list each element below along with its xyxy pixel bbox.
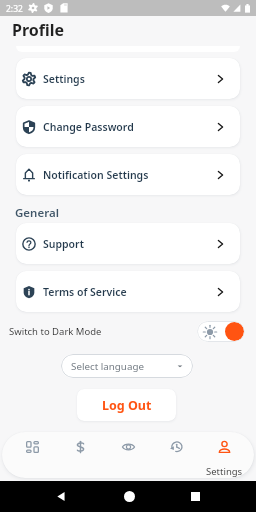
staticText: Select language xyxy=(71,360,144,373)
button[interactable]: Payments xyxy=(56,432,104,478)
staticText: Switch to Dark Mode xyxy=(9,325,102,338)
staticText: General xyxy=(15,205,59,221)
staticText: Support xyxy=(43,237,84,251)
staticText: 2:32 xyxy=(6,3,23,15)
button[interactable]: Select language xyxy=(61,354,193,378)
button[interactable]: Watchlist xyxy=(104,432,152,478)
button[interactable]: History xyxy=(152,432,200,478)
button[interactable]: Log Out xyxy=(77,389,176,421)
button[interactable]: Support xyxy=(16,223,240,264)
button[interactable]: Settings xyxy=(16,58,240,99)
button[interactable]: Settings xyxy=(200,432,248,478)
staticText: Terms of Service xyxy=(43,285,127,299)
staticText: Change Password xyxy=(43,120,134,134)
staticText: Notification Settings xyxy=(43,168,149,182)
staticText: Log Out xyxy=(102,397,152,414)
button[interactable]: Notification Settings xyxy=(16,154,240,195)
staticText: Settings xyxy=(43,72,85,86)
staticText: Profile xyxy=(12,19,65,41)
staticText: Settings xyxy=(206,465,243,478)
button[interactable]: Terms of Service xyxy=(16,271,240,312)
button[interactable]: Change Password xyxy=(16,106,240,147)
button[interactable]: Toggle dark mode xyxy=(197,321,245,342)
button[interactable]: Dashboard xyxy=(8,432,56,478)
